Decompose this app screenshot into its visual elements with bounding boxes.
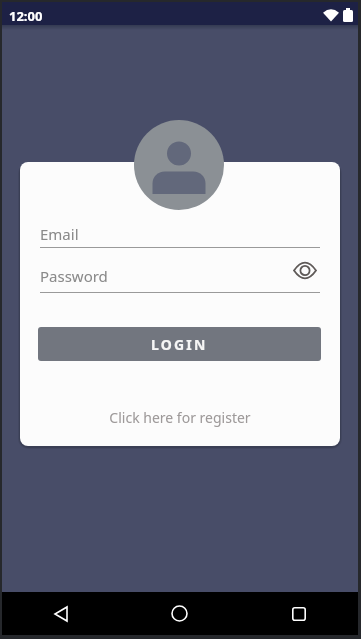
button[interactable] xyxy=(239,592,358,635)
button[interactable]: LOGIN xyxy=(38,327,321,361)
staticText: Password xyxy=(40,266,108,286)
button[interactable]: Click here for register xyxy=(20,408,340,427)
staticText: Click here for register xyxy=(109,408,251,427)
button[interactable] xyxy=(120,592,239,635)
button[interactable] xyxy=(2,592,120,635)
staticText: 12:00 xyxy=(9,7,43,25)
staticText: Email xyxy=(40,224,79,244)
staticText: LOGIN xyxy=(151,335,208,354)
button[interactable] xyxy=(293,262,317,279)
